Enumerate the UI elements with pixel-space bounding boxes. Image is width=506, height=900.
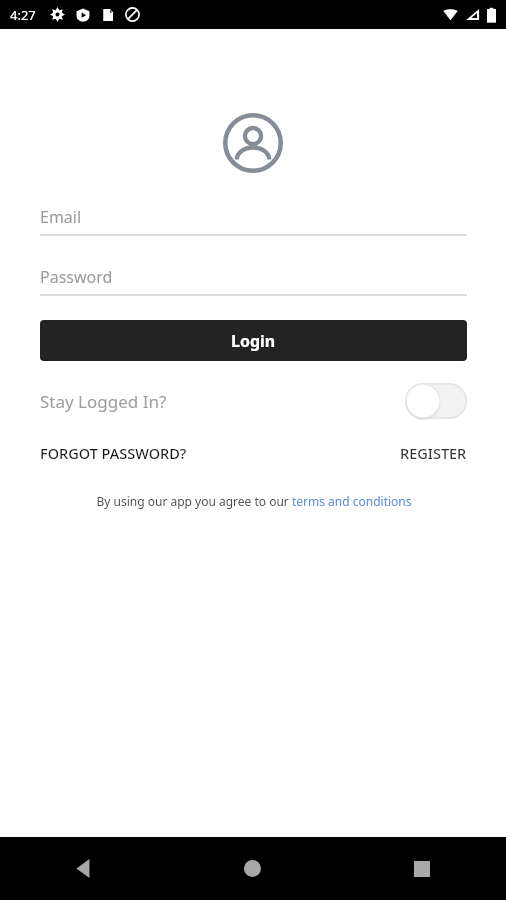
staticText: Login (231, 330, 276, 352)
staticText: Email (40, 206, 82, 228)
staticText: FORGOT PASSWORD? (40, 443, 187, 463)
button[interactable]: FORGOT PASSWORD? (40, 443, 187, 463)
staticText: Stay Logged In? (40, 390, 167, 413)
button[interactable]: Recent apps (337, 837, 506, 900)
staticText: By using our app you agree to our terms … (96, 493, 412, 509)
button[interactable]: Home (168, 837, 337, 900)
button[interactable]: Stay Logged In? (40, 377, 467, 425)
button[interactable]: Back (0, 837, 168, 900)
button[interactable]: By using our app you agree to our terms … (40, 493, 467, 509)
button[interactable]: Email (40, 200, 467, 236)
staticText: REGISTER (400, 443, 467, 463)
staticText: 4:27 (10, 6, 36, 24)
other: Account avatar (223, 113, 283, 173)
button[interactable]: REGISTER (400, 443, 467, 463)
button[interactable]: Login (40, 320, 467, 361)
staticText: Password (40, 266, 113, 288)
button[interactable]: Password (40, 260, 467, 296)
button[interactable]: Stay logged in toggle (405, 383, 467, 419)
